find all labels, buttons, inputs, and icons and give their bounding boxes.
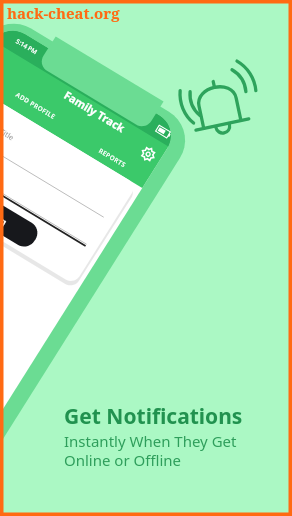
staticText: Get Notifications — [64, 402, 243, 431]
staticText: Instantly When They Get Online or Offlin… — [64, 431, 237, 470]
staticText: hack-cheat.org — [7, 3, 120, 23]
